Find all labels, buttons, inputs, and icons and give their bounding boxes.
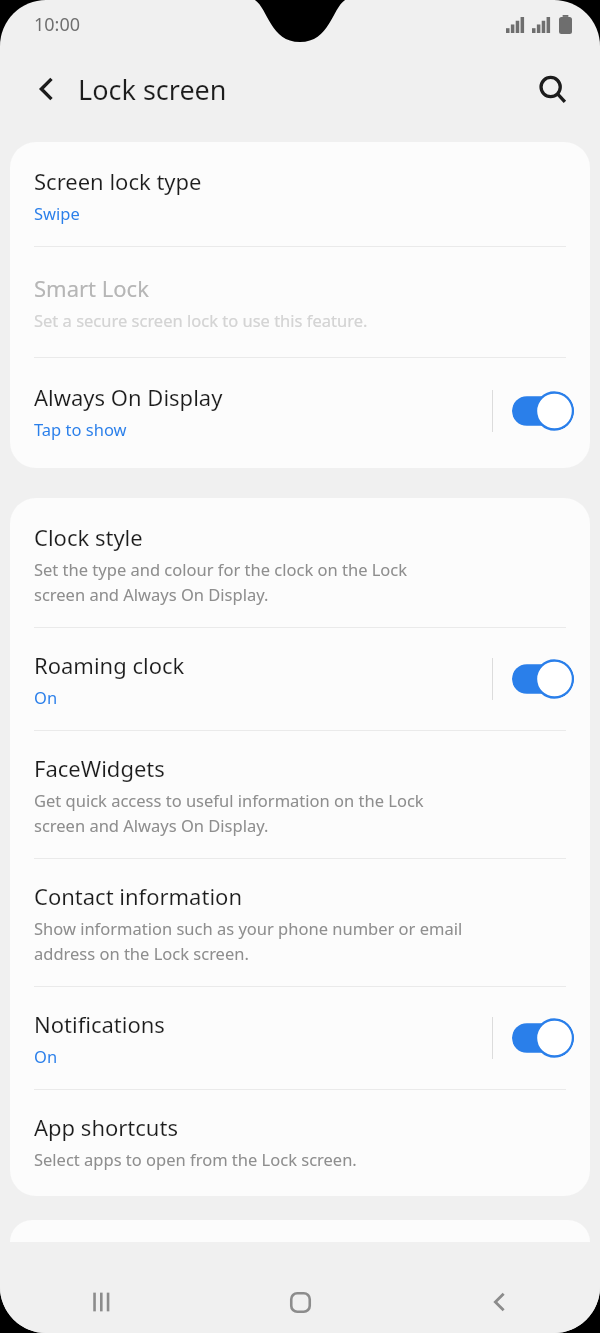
staticText: Swipe — [34, 202, 80, 224]
button[interactable]: Toggle on — [512, 1018, 574, 1058]
staticText: Get quick access to useful information o… — [34, 789, 424, 836]
button[interactable]: Notifications — [10, 987, 590, 1089]
staticText: Contact information — [34, 881, 242, 911]
staticText: On — [34, 1045, 58, 1067]
button[interactable]: Contact information — [10, 859, 590, 986]
button[interactable]: Back — [400, 1271, 600, 1333]
staticText: FaceWidgets — [34, 753, 165, 783]
staticText: Select apps to open from the Lock screen… — [34, 1148, 357, 1170]
staticText: Set the type and colour for the clock on… — [34, 558, 408, 605]
button[interactable]: Toggle on — [512, 659, 574, 699]
button[interactable]: Back — [20, 62, 74, 116]
staticText: Tap to show — [34, 418, 127, 440]
button[interactable]: FaceWidgets — [10, 731, 590, 858]
button[interactable]: Always On Display — [10, 358, 590, 468]
button[interactable]: Toggle on — [512, 391, 574, 431]
button[interactable]: Screen lock type — [10, 142, 590, 246]
staticText: Set a secure screen lock to use this fea… — [34, 309, 368, 331]
button[interactable]: App shortcuts — [10, 1090, 590, 1196]
staticText: Roaming clock — [34, 650, 185, 680]
button[interactable]: Smart Lock — [10, 247, 590, 357]
button[interactable]: Search — [524, 61, 580, 117]
staticText: 10:00 — [34, 12, 81, 37]
staticText: App shortcuts — [34, 1112, 178, 1142]
staticText: Clock style — [34, 522, 143, 552]
staticText: Notifications — [34, 1009, 165, 1039]
staticText: On — [34, 686, 58, 708]
button[interactable]: Home — [200, 1271, 400, 1333]
staticText: Show information such as your phone numb… — [34, 917, 463, 964]
button[interactable]: Recent apps — [0, 1271, 200, 1333]
button[interactable]: Clock style — [10, 498, 590, 627]
staticText: Smart Lock — [34, 273, 149, 303]
staticText: Lock screen — [78, 71, 227, 108]
staticText: Screen lock type — [34, 166, 202, 196]
button[interactable]: Roaming clock — [10, 628, 590, 730]
staticText: Always On Display — [34, 382, 223, 412]
